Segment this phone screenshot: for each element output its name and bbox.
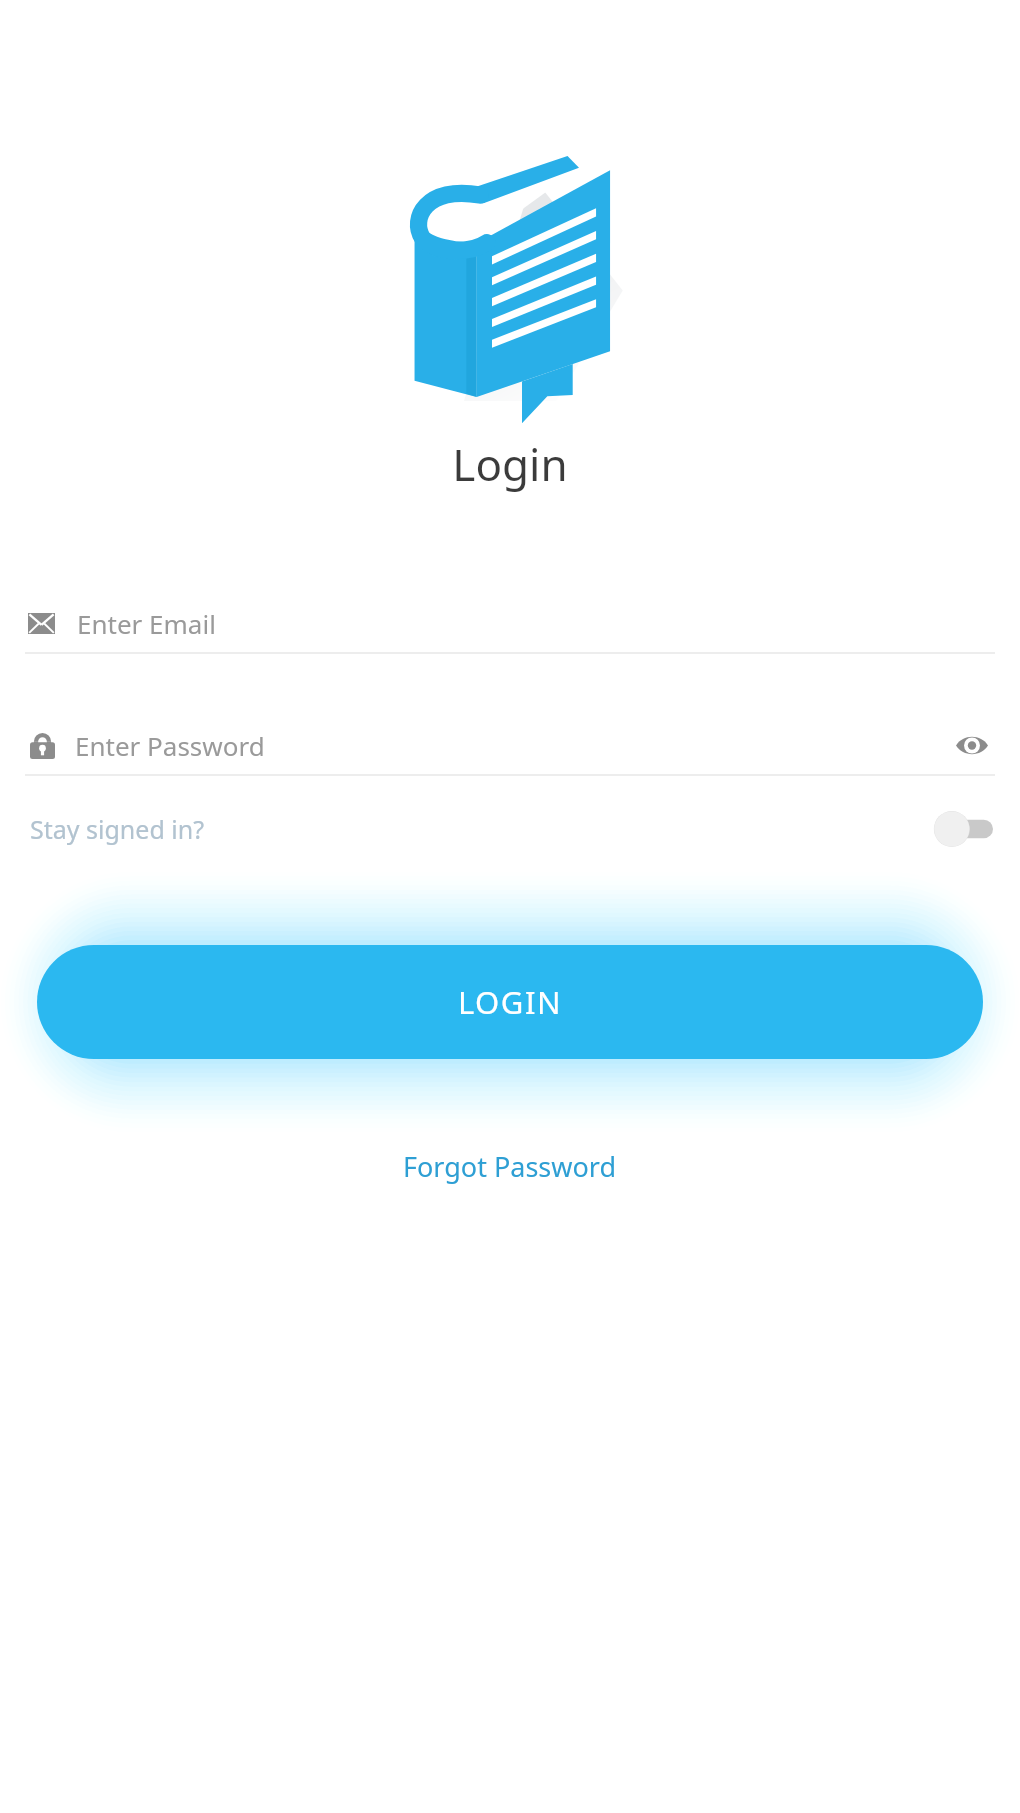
staticText: Enter Password (75, 728, 265, 763)
staticText: LOGIN (458, 981, 562, 1023)
button[interactable]: Stay signed in toggle (933, 807, 993, 851)
button[interactable]: Forgot Password (403, 1148, 617, 1185)
button[interactable]: LOGIN (37, 945, 983, 1059)
button[interactable]: Stay signed in? (25, 798, 995, 860)
staticText: Forgot Password (403, 1148, 617, 1185)
staticText: Enter Email (77, 606, 216, 641)
staticText: Login (452, 434, 568, 494)
button[interactable]: Show password (949, 722, 995, 768)
staticText: Stay signed in? (30, 812, 205, 846)
button[interactable]: Enter Email (25, 594, 995, 654)
button[interactable]: Enter Password (25, 716, 995, 776)
